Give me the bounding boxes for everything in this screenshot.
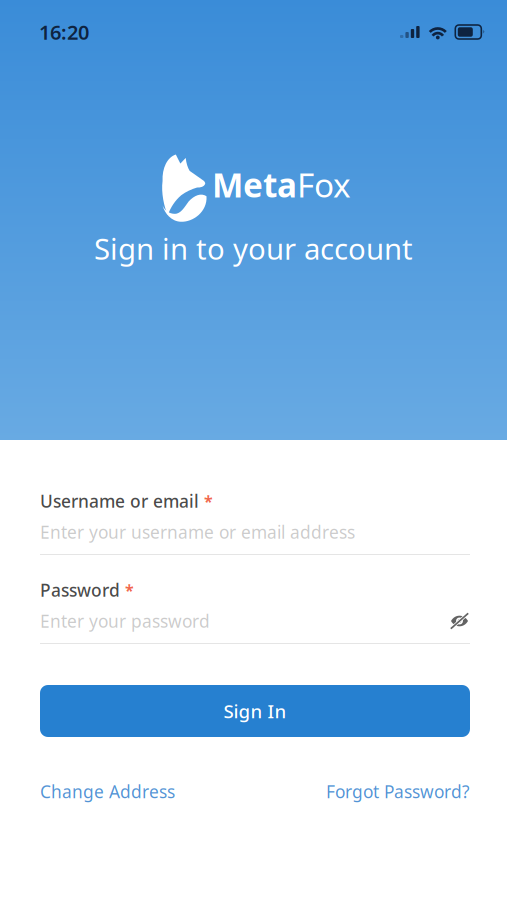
staticText: Forgot Password? [326, 780, 470, 803]
staticText: Password [40, 578, 120, 601]
staticText: Fox [297, 162, 351, 207]
staticText: Sign in to your account [94, 229, 413, 268]
button[interactable]: Sign In [40, 685, 470, 737]
staticText: * [125, 579, 134, 601]
staticText: Enter your password [40, 609, 210, 632]
staticText: Enter your username or email address [40, 520, 355, 543]
staticText: Meta [212, 162, 297, 207]
staticText: Sign In [223, 699, 286, 723]
staticText: Username or email [40, 489, 199, 512]
staticText: Change Address [40, 780, 175, 803]
button[interactable]: Show password [449, 610, 470, 631]
button[interactable]: Forgot Password? [326, 780, 470, 803]
button[interactable]: Change Address [40, 780, 175, 803]
staticText: * [204, 490, 213, 512]
staticText: 16:20 [39, 19, 89, 45]
